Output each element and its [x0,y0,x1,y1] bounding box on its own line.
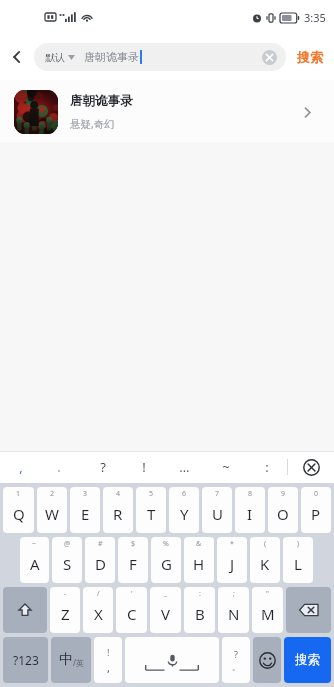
button[interactable]: 5 [136,487,166,533]
staticText: ! [107,646,110,658]
staticText: S [63,554,72,574]
button[interactable]: ' [116,587,147,633]
staticText: Y [180,504,189,524]
button[interactable]: 搜索 [284,637,331,683]
button[interactable]: 默认 [34,43,286,71]
button[interactable]: ) [283,537,313,583]
staticText: 默认 [45,51,65,64]
button[interactable]: & [184,537,214,583]
button[interactable]: @ [52,537,82,583]
button[interactable]: 3 [70,487,100,533]
staticText: _ [164,589,168,599]
staticText: N [228,604,240,624]
button[interactable]: ? [222,637,250,683]
staticText: 3 [83,489,88,499]
button[interactable]: 6 [169,487,199,533]
staticText: F [129,554,137,574]
button[interactable]: % [151,537,181,583]
button[interactable]: ; [218,587,249,633]
staticText: ~ [32,539,37,549]
staticText: ; [233,589,235,599]
button[interactable]: 搜索 [286,34,334,80]
staticText: ) [297,539,300,549]
button[interactable]: _ [150,587,181,633]
staticText: B [195,604,205,624]
button[interactable]: 。 [41,451,82,483]
staticText: : [265,458,269,476]
staticText: G [161,554,172,574]
staticText: E [81,504,90,524]
staticText: O [277,504,289,524]
staticText: X [94,604,103,624]
staticText: 7 [215,489,220,499]
staticText: R [113,504,123,524]
button[interactable]: ~ [205,451,246,483]
button[interactable]: 0 [301,487,331,533]
staticText: ! [142,458,146,476]
staticText: /英 [73,657,84,668]
button[interactable]: Clear text [256,44,282,70]
staticText: 中 [59,651,73,669]
button[interactable]: ~ [20,537,49,583]
button[interactable]: Switch language [51,637,91,683]
button[interactable]: : [246,451,287,483]
button[interactable]: 唐朝诡事录 [0,80,334,143]
staticText: 搜索 [295,652,320,668]
staticText: U [212,504,223,524]
staticText: , [107,660,110,675]
staticText: 1 [16,489,21,499]
button[interactable]: # [85,537,115,583]
button[interactable]: Backspace [286,587,331,633]
button[interactable]: 1 [3,487,34,533]
staticText: $ [131,539,136,549]
staticText: D [95,554,106,574]
button[interactable]: / [83,587,113,633]
staticText: - [64,589,67,599]
button[interactable]: 7 [202,487,232,533]
staticText: 5 [149,489,154,499]
staticText: 悬疑,奇幻 [70,117,115,131]
button[interactable]: : [184,587,215,633]
button[interactable]: - [50,587,80,633]
staticText: ~ [222,458,230,476]
staticText: 2 [50,489,55,499]
staticText: Q [13,504,25,524]
staticText: 搜索 [297,49,323,65]
staticText: 。 [57,462,66,473]
staticText: T [147,504,156,524]
button[interactable]: ! [94,637,122,683]
button[interactable]: Close keyboard [288,451,334,483]
button[interactable]: Shift [3,587,47,633]
staticText: 3:35 [304,10,326,25]
button[interactable]: 8 [235,487,265,533]
button[interactable]: Space [125,637,219,683]
staticText: & [196,539,202,549]
staticText: ? [234,648,238,660]
button[interactable]: ? [82,451,123,483]
staticText: " [266,589,269,599]
staticText: C [127,604,137,624]
staticText: 8 [248,489,253,499]
button[interactable]: $ [118,537,148,583]
button[interactable]: * [217,537,247,583]
button[interactable]: ?123 [3,637,48,683]
staticText: # [98,539,103,549]
button[interactable]: ! [123,451,164,483]
staticText: ?123 [13,652,39,668]
button[interactable]: … [164,451,205,483]
button[interactable]: Back [0,40,34,74]
staticText: K [260,554,270,574]
button[interactable]: 4 [103,487,133,533]
button[interactable]: ( [250,537,280,583]
staticText: 0 [314,489,319,499]
staticText: M [261,604,275,624]
staticText: 。 [232,662,240,672]
other: Open details [292,97,322,127]
staticText: ' [131,589,133,599]
button[interactable]: Emoji [253,637,281,683]
button[interactable]: 2 [37,487,67,533]
button[interactable]: " [252,587,283,633]
button[interactable]: 9 [268,487,298,533]
button[interactable]: , [0,451,41,483]
staticText: … [179,458,190,476]
